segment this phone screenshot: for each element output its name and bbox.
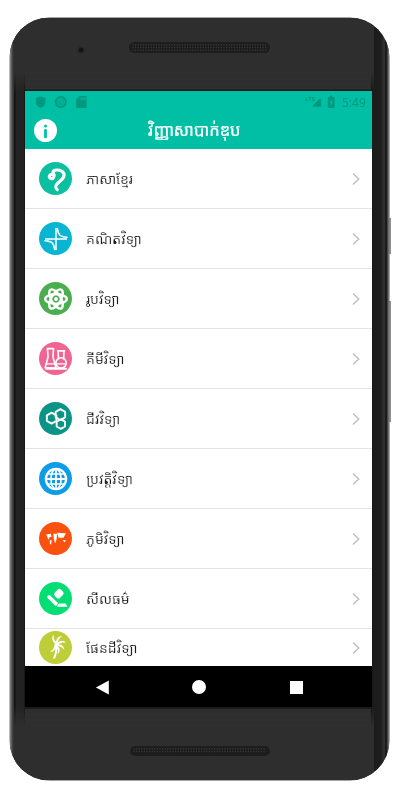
button[interactable]: គណិតវិទ្យា [25,209,372,268]
staticText: ប្រវត្តិវិទ្យា [86,469,134,488]
staticText: LTE [305,95,316,103]
button[interactable]: ភាសាខ្មែរ [25,149,372,208]
button[interactable]: Back [82,667,122,707]
staticText: ភាសាខ្មែរ [86,169,133,188]
button[interactable]: ជីវវិទ្យា [25,389,372,448]
button[interactable]: ប្រវត្តិវិទ្យា [25,449,372,508]
button[interactable]: ភូមិវិទ្យា [25,509,372,568]
staticText: សីលធម៌ [86,589,130,608]
staticText: គីមីវិទ្យា [86,349,125,368]
staticText: វិញ្ញាសាបាក់ឌុប [148,118,241,140]
staticText: ផែនដីវិទ្យា [86,638,138,657]
button[interactable]: គីមីវិទ្យា [25,329,372,388]
button[interactable]: Home [179,667,219,707]
button[interactable]: Info [29,114,61,146]
staticText: ជីវវិទ្យា [86,409,121,428]
button[interactable]: រូបវិទ្យា [25,269,372,328]
button[interactable]: Recents [276,667,316,707]
staticText: គណិតវិទ្យា [86,229,143,248]
staticText: 5:49 [342,94,366,110]
button[interactable]: ផែនដីវិទ្យា [25,629,372,666]
staticText: ភូមិវិទ្យា [86,529,125,548]
button[interactable]: សីលធម៌ [25,569,372,628]
staticText: រូបវិទ្យា [86,289,120,308]
